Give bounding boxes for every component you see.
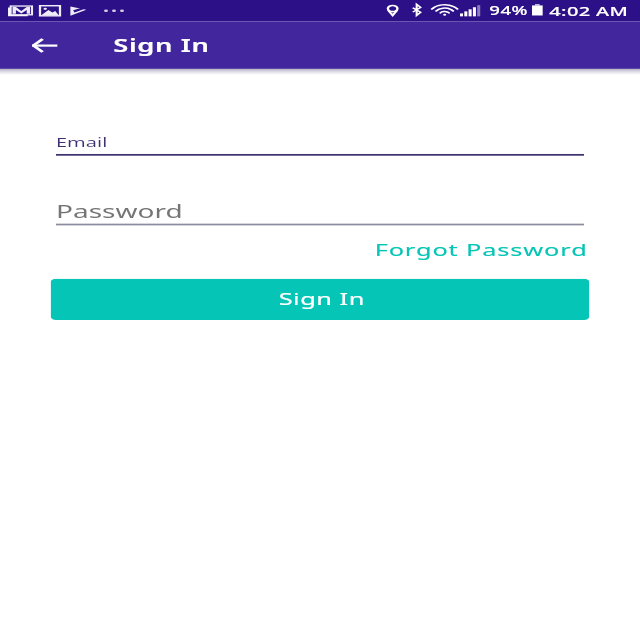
button[interactable]: Password (56, 191, 584, 225)
staticText: Password (56, 199, 183, 224)
button[interactable]: Forgot Password (375, 239, 588, 261)
staticText: Sign In (113, 33, 211, 57)
button[interactable]: Email (56, 126, 584, 156)
button[interactable]: Sign In (51, 279, 589, 320)
staticText: Sign In (279, 288, 365, 311)
button[interactable]: Back (8, 21, 81, 69)
staticText: Email (56, 133, 108, 150)
staticText: 4:02 AM (549, 3, 629, 20)
staticText: Forgot Password (375, 239, 588, 261)
staticText: 94% (489, 3, 528, 19)
